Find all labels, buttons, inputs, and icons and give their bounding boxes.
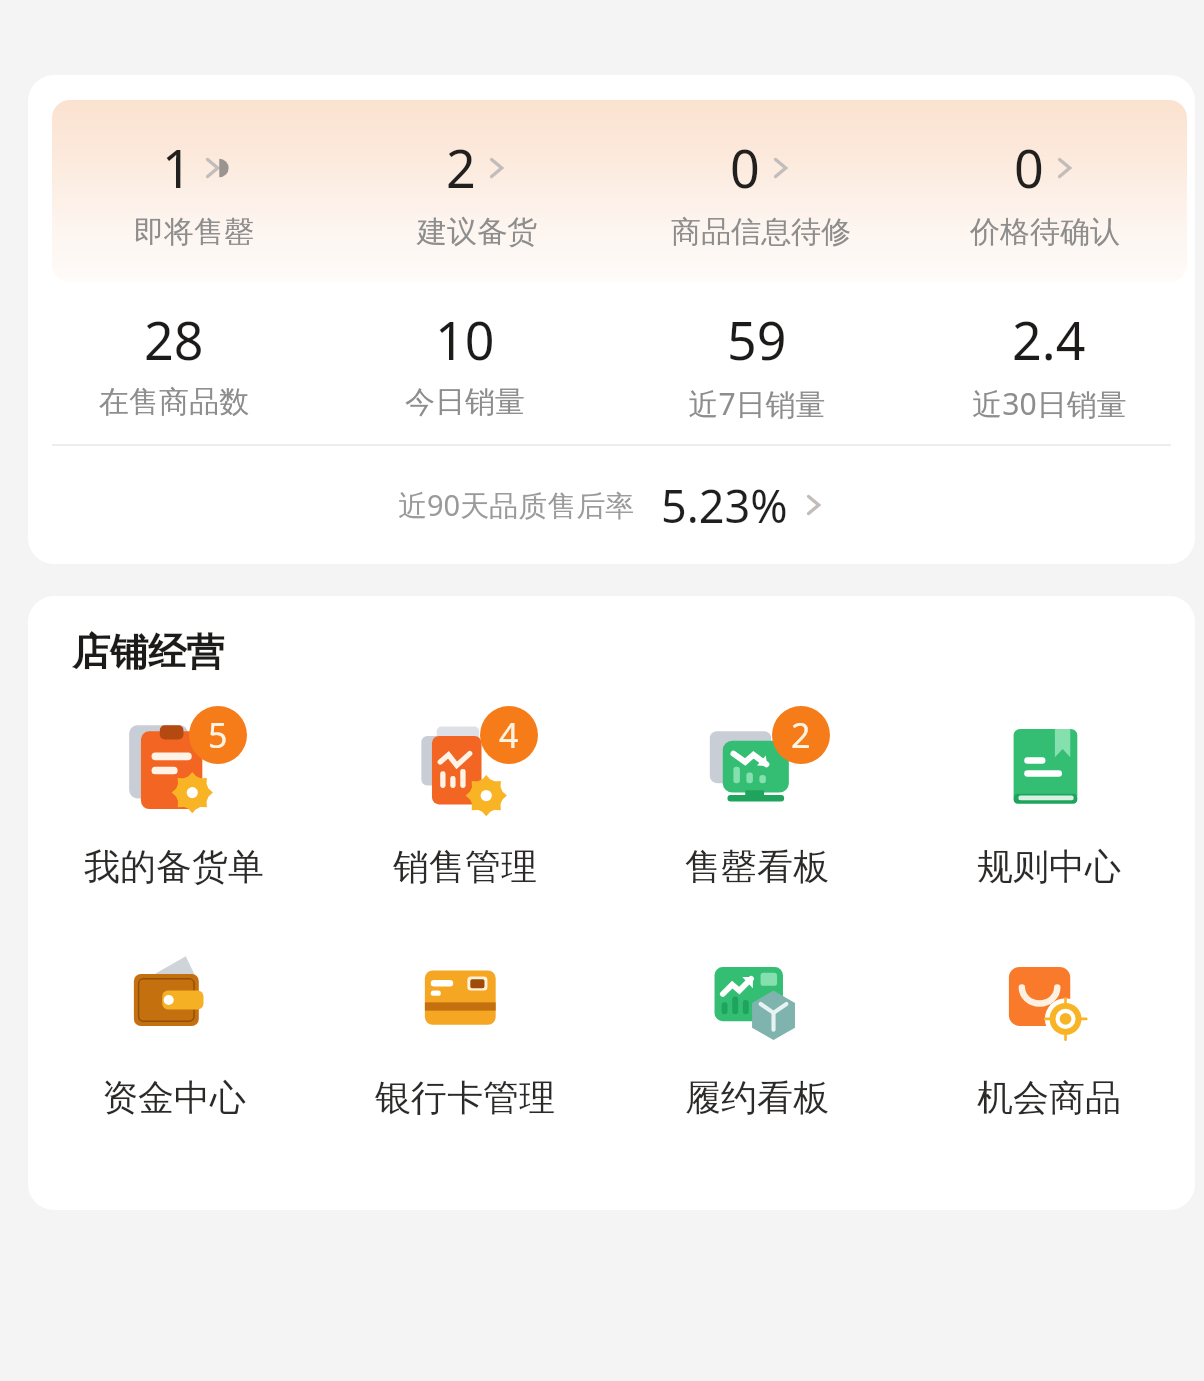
button[interactable]: 销售管理 — [319, 710, 611, 889]
button[interactable]: 资金中心 — [28, 941, 319, 1120]
button[interactable]: 2 — [335, 132, 619, 251]
staticText: 59 — [727, 304, 787, 375]
staticText: 店铺经营 — [72, 628, 224, 676]
staticText: 10 — [435, 304, 495, 375]
staticText: 履约看板 — [685, 1075, 829, 1120]
button[interactable]: 我的备货单 — [28, 710, 319, 889]
staticText: 5 — [208, 712, 228, 758]
staticText: 即将售罄 — [134, 213, 254, 251]
button[interactable]: 59 — [611, 304, 903, 424]
button[interactable]: 1 — [52, 132, 335, 251]
staticText: 银行卡管理 — [375, 1075, 555, 1120]
staticText: 我的备货单 — [84, 844, 264, 889]
staticText: 近30日销量 — [972, 383, 1127, 424]
staticText: 规则中心 — [977, 844, 1121, 889]
staticText: 近90天品质售后率 — [398, 485, 635, 525]
button[interactable]: 履约看板 — [611, 941, 903, 1120]
staticText: 近7日销量 — [688, 383, 826, 424]
staticText: 2.4 — [1012, 304, 1086, 375]
staticText: 价格待确认 — [970, 213, 1120, 251]
staticText: 1 — [162, 132, 192, 203]
button[interactable]: 28 — [28, 304, 319, 421]
staticText: 销售管理 — [393, 844, 537, 889]
staticText: 0 — [730, 132, 760, 203]
staticText: 今日销量 — [405, 383, 525, 421]
staticText: 售罄看板 — [685, 844, 829, 889]
button[interactable]: 0 — [903, 132, 1187, 251]
staticText: 28 — [144, 304, 204, 375]
button[interactable]: 机会商品 — [903, 941, 1195, 1120]
button[interactable]: 2.4 — [903, 304, 1195, 424]
button[interactable]: 0 — [619, 132, 903, 251]
staticText: 资金中心 — [102, 1075, 246, 1120]
staticText: 在售商品数 — [99, 383, 249, 421]
button[interactable]: 售罄看板 — [611, 710, 903, 889]
staticText: 商品信息待修 — [671, 213, 851, 251]
staticText: 4 — [499, 712, 519, 758]
staticText: 建议备货 — [417, 213, 537, 251]
button[interactable]: 10 — [319, 304, 611, 421]
button[interactable]: 银行卡管理 — [319, 941, 611, 1120]
button[interactable]: 规则中心 — [903, 710, 1195, 889]
staticText: 2 — [446, 132, 476, 203]
staticText: 5.23% — [661, 475, 788, 536]
staticText: 机会商品 — [977, 1075, 1121, 1120]
button[interactable]: 近90天品质售后率 — [28, 446, 1195, 564]
staticText: 0 — [1014, 132, 1044, 203]
staticText: 2 — [791, 712, 811, 758]
